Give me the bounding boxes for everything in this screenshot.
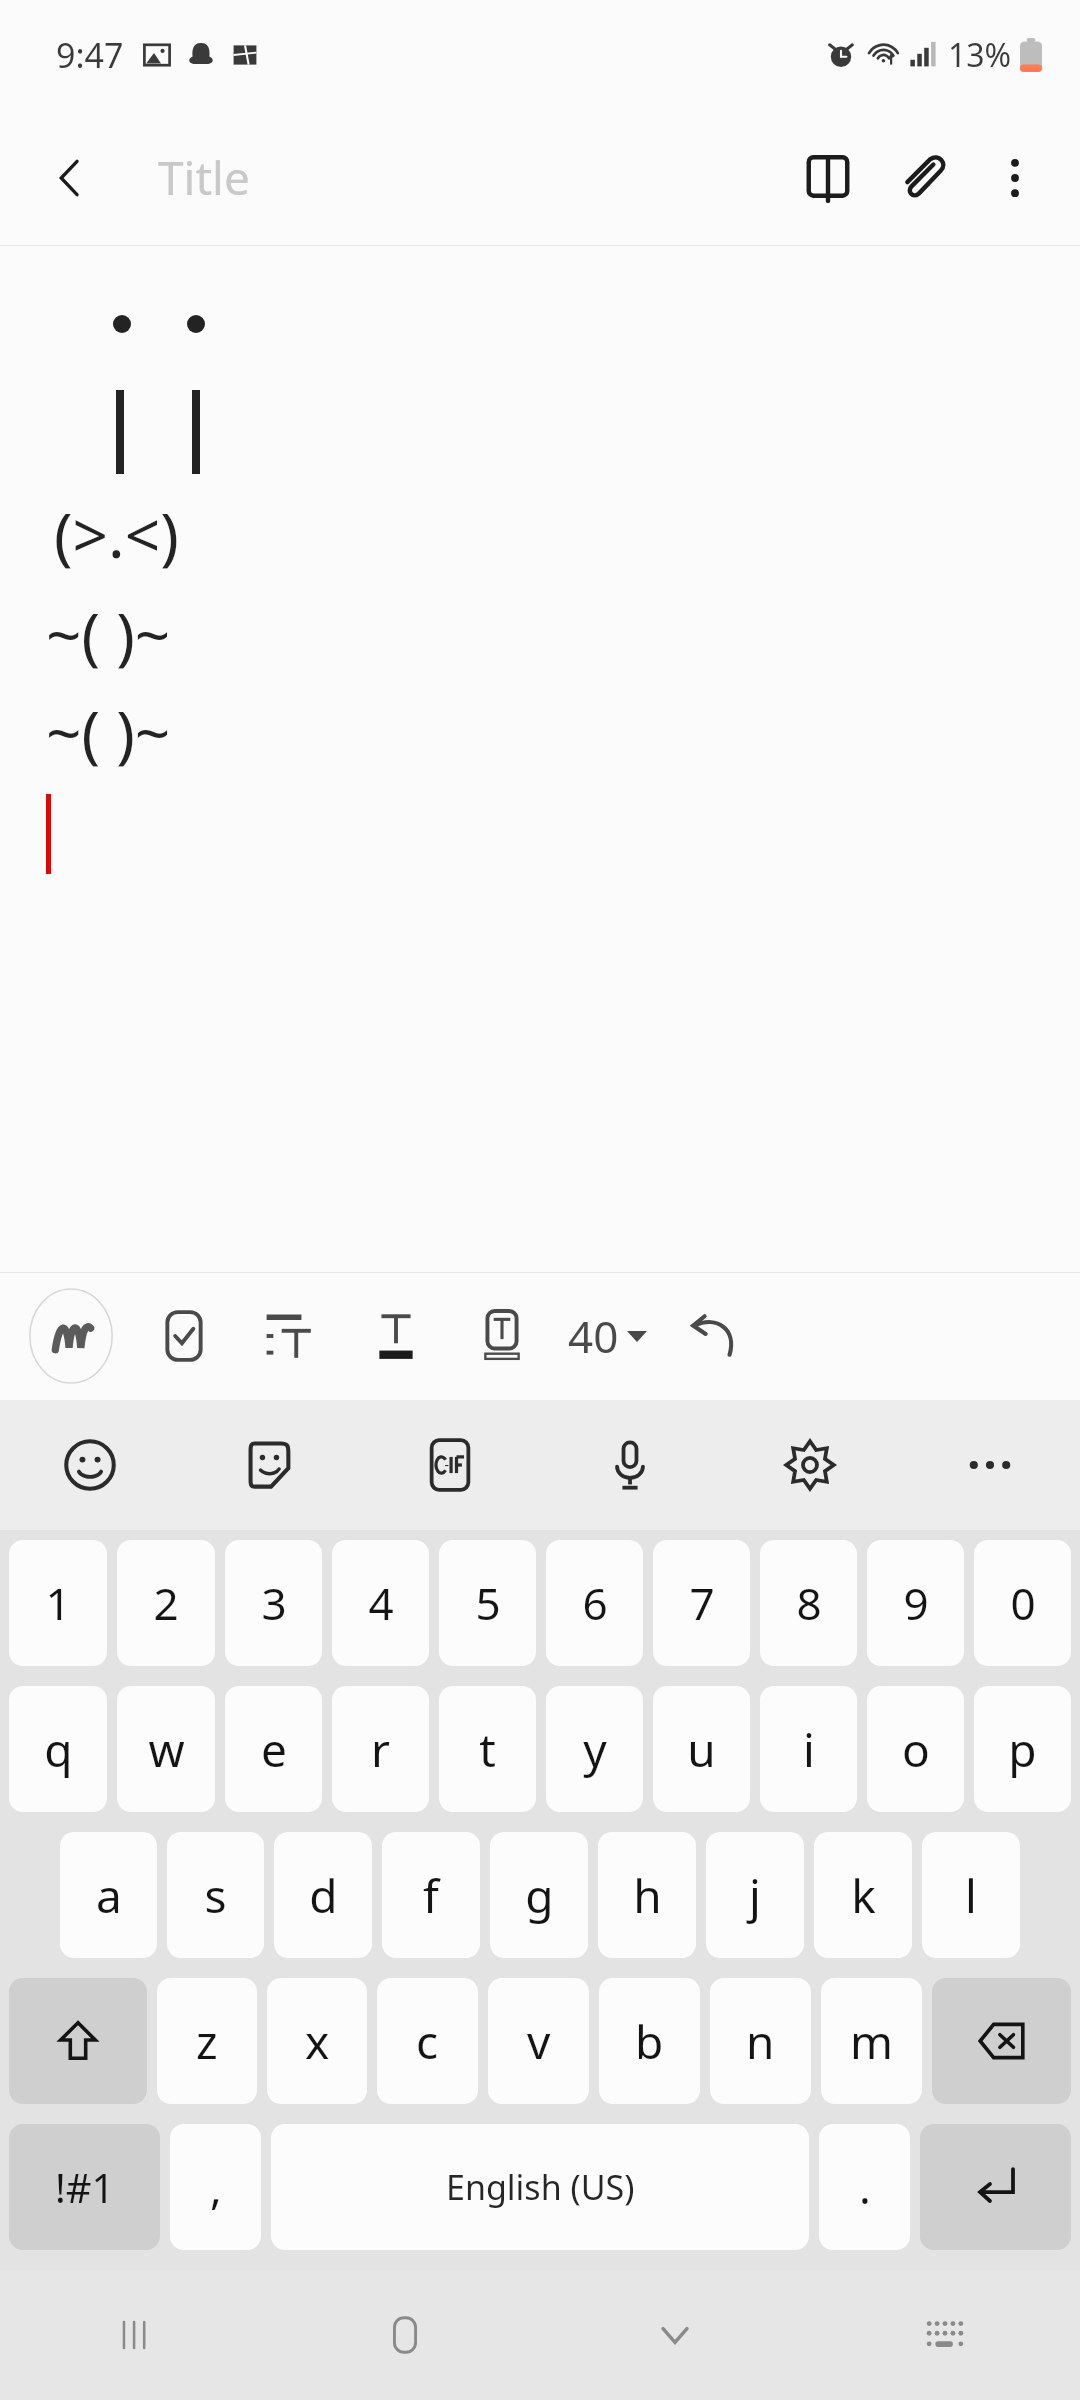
button[interactable]: Attach xyxy=(876,130,972,226)
button[interactable]: !#1 xyxy=(9,2124,160,2250)
button[interactable]: e xyxy=(225,1686,322,1812)
button[interactable]: 1 xyxy=(9,1540,107,1666)
button[interactable]: , xyxy=(170,2124,261,2250)
button[interactable]: 7 xyxy=(653,1540,750,1666)
button[interactable]: z xyxy=(157,1978,257,2104)
staticText: i xyxy=(803,1718,815,1781)
button[interactable]: y xyxy=(546,1686,643,1812)
staticText: h xyxy=(633,1864,662,1927)
button[interactable]: b xyxy=(599,1978,700,2104)
staticText: , xyxy=(210,2157,222,2217)
button[interactable]: m xyxy=(821,1978,922,2104)
button[interactable]: Enter xyxy=(920,2124,1071,2250)
staticText: 0 xyxy=(1010,1573,1036,1633)
button[interactable]: w xyxy=(117,1686,215,1812)
staticText: o xyxy=(902,1718,930,1781)
button[interactable]: g xyxy=(490,1832,588,1958)
staticText: t xyxy=(479,1718,496,1781)
staticText: (>.<) xyxy=(54,492,179,576)
staticText: l xyxy=(965,1864,977,1927)
button[interactable]: Text style xyxy=(354,1294,438,1378)
button[interactable]: 4 xyxy=(332,1540,429,1666)
button[interactable]: l xyxy=(922,1832,1020,1958)
staticText: e xyxy=(261,1718,287,1781)
button[interactable]: s xyxy=(167,1832,264,1958)
button[interactable]: t xyxy=(439,1686,536,1812)
staticText: w xyxy=(148,1718,185,1781)
button[interactable]: Recents xyxy=(0,2270,270,2400)
staticText: p xyxy=(1008,1718,1037,1781)
button[interactable]: 9 xyxy=(867,1540,964,1666)
button[interactable]: 8 xyxy=(760,1540,857,1666)
staticText: k xyxy=(851,1864,876,1927)
staticText: d xyxy=(309,1864,338,1927)
button[interactable]: p xyxy=(974,1686,1071,1812)
staticText: z xyxy=(196,2010,218,2073)
button[interactable]: 6 xyxy=(546,1540,643,1666)
button[interactable]: c xyxy=(377,1978,478,2104)
staticText: y xyxy=(583,1718,607,1781)
button[interactable]: u xyxy=(653,1686,750,1812)
staticText: 9 xyxy=(903,1573,929,1633)
button[interactable]: Undo xyxy=(673,1294,757,1378)
staticText: 40 xyxy=(568,1306,619,1366)
button[interactable]: q xyxy=(9,1686,107,1812)
button[interactable]: Checklist xyxy=(142,1294,226,1378)
staticText: 7 xyxy=(689,1573,715,1633)
button[interactable]: n xyxy=(710,1978,811,2104)
button[interactable]: Handwriting xyxy=(22,1287,120,1385)
button[interactable]: Stickers xyxy=(180,1400,360,1530)
button[interactable]: h xyxy=(598,1832,696,1958)
button[interactable]: a xyxy=(60,1832,157,1958)
button[interactable]: 40 xyxy=(558,1306,657,1366)
button[interactable]: More options xyxy=(972,135,1058,221)
button[interactable]: k xyxy=(814,1832,912,1958)
button[interactable]: 5 xyxy=(439,1540,536,1666)
button[interactable]: . xyxy=(819,2124,910,2250)
button[interactable]: Paragraph style xyxy=(248,1294,332,1378)
staticText: 9:47 xyxy=(56,32,124,78)
button[interactable]: d xyxy=(274,1832,372,1958)
button[interactable]: 0 xyxy=(974,1540,1071,1666)
staticText: m xyxy=(850,2010,894,2073)
staticText: c xyxy=(416,2010,439,2073)
staticText: 2 xyxy=(153,1573,179,1633)
staticText: 13% xyxy=(948,33,1012,77)
button[interactable]: Voice input xyxy=(540,1400,720,1530)
button[interactable]: Backspace xyxy=(932,1978,1071,2104)
button[interactable]: (>.<) xyxy=(0,246,1080,1272)
button[interactable]: Hide keyboard xyxy=(540,2270,810,2400)
staticText: q xyxy=(44,1718,73,1781)
button[interactable]: o xyxy=(867,1686,964,1812)
button[interactable]: Change keyboard xyxy=(810,2270,1080,2400)
staticText: 1 xyxy=(45,1573,71,1633)
button[interactable]: r xyxy=(332,1686,429,1812)
button[interactable]: Reading view xyxy=(780,130,876,226)
button[interactable]: 2 xyxy=(117,1540,215,1666)
button[interactable]: Home xyxy=(270,2270,540,2400)
button[interactable]: j xyxy=(706,1832,804,1958)
staticText: 3 xyxy=(261,1573,287,1633)
button[interactable]: More xyxy=(900,1400,1080,1530)
button[interactable]: Shift xyxy=(9,1978,147,2104)
staticText: f xyxy=(423,1864,439,1927)
button[interactable]: Text highlight xyxy=(460,1294,544,1378)
button[interactable]: v xyxy=(488,1978,589,2104)
button[interactable]: Keyboard settings xyxy=(720,1400,900,1530)
staticText: r xyxy=(371,1718,390,1781)
staticText: English (US) xyxy=(446,2164,635,2210)
button[interactable]: f xyxy=(382,1832,480,1958)
staticText: x xyxy=(305,2010,330,2073)
button[interactable]: English (US) xyxy=(271,2124,809,2250)
button[interactable]: 3 xyxy=(225,1540,322,1666)
staticText: u xyxy=(687,1718,716,1781)
button[interactable]: Back xyxy=(30,138,110,218)
staticText: 6 xyxy=(582,1573,608,1633)
button[interactable]: GIF xyxy=(360,1400,540,1530)
button[interactable]: Emoji xyxy=(0,1400,180,1530)
button[interactable]: i xyxy=(760,1686,857,1812)
staticText: 5 xyxy=(475,1573,501,1633)
staticText: 8 xyxy=(796,1573,822,1633)
button[interactable]: x xyxy=(267,1978,367,2104)
staticText: s xyxy=(204,1864,227,1927)
